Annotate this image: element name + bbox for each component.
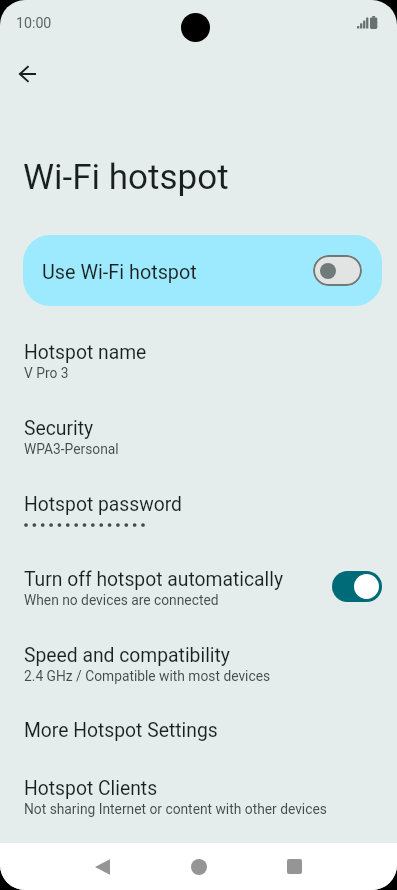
staticText: Wi-Fi hotspot — [23, 157, 229, 198]
button[interactable]: Security — [0, 403, 397, 479]
staticText: When no devices are connected — [24, 592, 219, 608]
button[interactable]: Use Wi-Fi hotspot — [313, 255, 362, 286]
staticText: WPA3-Personal — [24, 441, 119, 457]
button[interactable]: Hotspot Clients — [0, 763, 397, 822]
staticText: Hotspot password — [24, 493, 182, 516]
staticText: Hotspot name — [24, 341, 147, 364]
staticText: Speed and compatibility — [24, 644, 230, 667]
staticText: 2.4 GHz / Compatible with most devices — [24, 668, 271, 684]
staticText: Use Wi-Fi hotspot — [42, 261, 197, 284]
button[interactable]: Use Wi-Fi hotspot — [23, 235, 382, 306]
staticText: Turn off hotspot automatically — [24, 568, 284, 591]
button[interactable]: Speed and compatibility — [0, 630, 397, 706]
button[interactable]: Recent apps — [264, 843, 324, 890]
staticText: 10:00 — [16, 15, 52, 32]
button[interactable]: Hotspot password — [0, 479, 397, 554]
staticText: More Hotspot Settings — [24, 719, 218, 742]
staticText: V Pro 3 — [24, 365, 69, 381]
button[interactable]: Hotspot name — [0, 327, 397, 403]
button[interactable]: Turn off hotspot automatically — [332, 571, 382, 602]
button[interactable]: Turn off hotspot automatically — [0, 554, 397, 630]
staticText: Security — [24, 417, 94, 440]
staticText: Not sharing Internet or content with oth… — [24, 801, 327, 817]
button[interactable]: Home — [169, 843, 229, 890]
button[interactable]: Navigate up — [6, 53, 48, 95]
button[interactable]: More Hotspot Settings — [0, 705, 397, 762]
staticText: Hotspot Clients — [24, 777, 158, 800]
button[interactable]: Back — [73, 843, 133, 890]
